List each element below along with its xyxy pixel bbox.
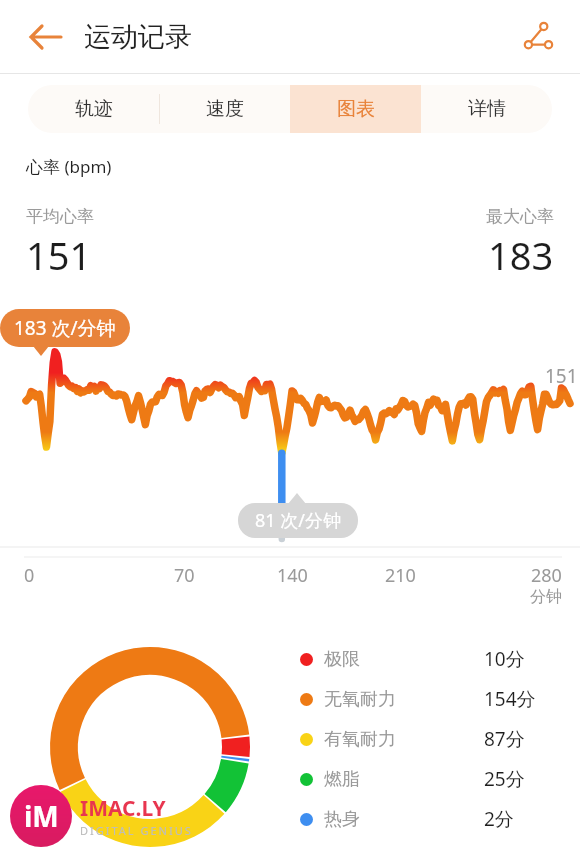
staticText: 183 次/分钟 <box>14 315 116 341</box>
staticText: 有氧耐力 <box>324 728 396 751</box>
button[interactable]: 速度 <box>159 85 290 133</box>
staticText: 心率 (bpm) <box>26 155 112 178</box>
staticText: 140 <box>277 563 308 588</box>
button[interactable]: 极限 <box>300 645 580 673</box>
staticText: 轨迹 <box>75 97 113 121</box>
button[interactable]: 燃脂 <box>300 765 580 793</box>
button[interactable]: 有氧耐力 <box>300 725 580 753</box>
staticText: 无氧耐力 <box>324 688 396 711</box>
staticText: 燃脂 <box>324 768 360 791</box>
staticText: 70 <box>174 563 195 588</box>
button[interactable]: 轨迹 <box>28 85 159 133</box>
button[interactable]: 热身 <box>300 805 580 833</box>
staticText: 极限 <box>324 648 360 671</box>
staticText: 280 <box>531 563 562 588</box>
staticText: 10分 <box>484 646 525 672</box>
staticText: 0 <box>24 563 35 588</box>
staticText: 运动记录 <box>84 20 192 54</box>
staticText: 81 次/分钟 <box>255 508 341 533</box>
button[interactable]: Share <box>514 13 562 61</box>
staticText: 154分 <box>484 686 536 712</box>
staticText: IMAC.LY <box>80 794 166 823</box>
button[interactable]: 无氧耐力 <box>300 685 580 713</box>
staticText: 速度 <box>206 97 244 121</box>
staticText: 2分 <box>484 806 514 832</box>
staticText: 210 <box>385 563 416 588</box>
staticText: 151 <box>26 229 92 281</box>
staticText: iM <box>24 797 59 835</box>
staticText: 183 <box>488 229 554 281</box>
staticText: 25分 <box>484 766 525 792</box>
staticText: 图表 <box>337 97 375 121</box>
staticText: 最大心率 <box>486 206 554 227</box>
button[interactable]: 图表 <box>290 85 421 133</box>
staticText: 87分 <box>484 726 525 752</box>
staticText: 分钟 <box>530 587 562 607</box>
button[interactable]: 详情 <box>421 85 552 133</box>
staticText: 151 <box>545 363 578 389</box>
staticText: 热身 <box>324 808 360 831</box>
staticText: 详情 <box>468 97 506 121</box>
staticText: 平均心率 <box>26 206 94 227</box>
staticText: DIGITAL GENIUS <box>80 823 193 838</box>
button[interactable]: Back <box>24 15 68 59</box>
